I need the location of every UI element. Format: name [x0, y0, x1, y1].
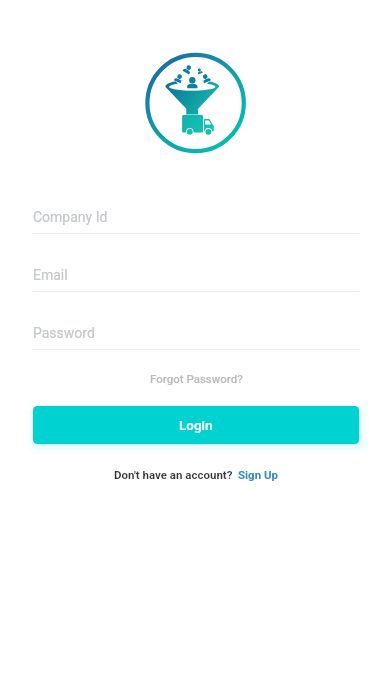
staticText: Company Id — [33, 209, 108, 225]
staticText: Email — [33, 267, 68, 283]
staticText: Forgot Password? — [150, 372, 243, 385]
staticText: Don't have an account? — [114, 468, 233, 481]
staticText: Password — [33, 325, 95, 341]
button[interactable]: Forgot Password? — [144, 369, 249, 388]
button[interactable]: Login — [33, 406, 359, 444]
button[interactable]: Password — [33, 325, 359, 355]
button[interactable]: Sign Up — [238, 468, 279, 481]
button[interactable]: Email — [33, 267, 359, 297]
staticText: Sign Up — [238, 468, 279, 481]
staticText: Login — [179, 417, 213, 433]
button[interactable]: Company Id — [33, 209, 359, 239]
